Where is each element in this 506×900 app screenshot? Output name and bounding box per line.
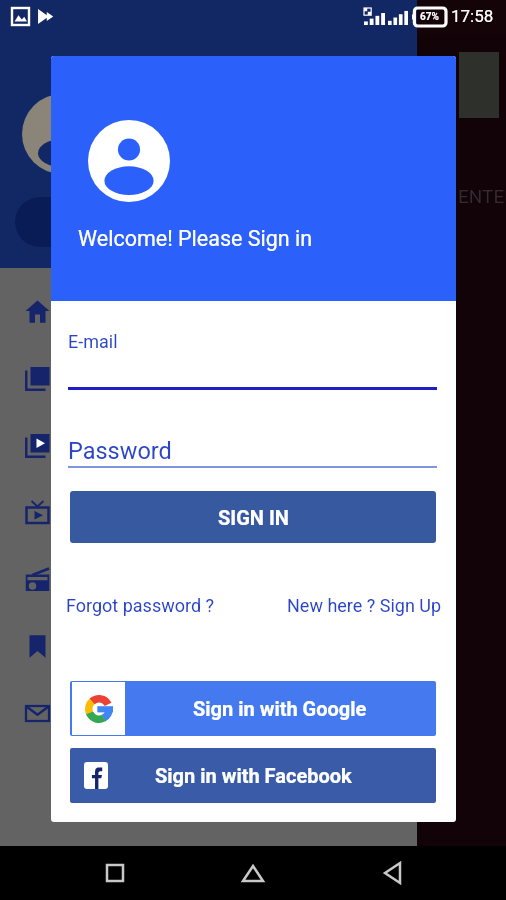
button[interactable]: SIGN IN xyxy=(70,491,436,543)
staticText: Forgot password ? xyxy=(66,595,215,616)
button[interactable]: Home xyxy=(229,849,277,897)
button[interactable]: Sign in with Facebook xyxy=(70,748,436,803)
button[interactable] xyxy=(0,613,417,680)
staticText: Welcome! Please Sign in xyxy=(78,226,313,251)
button[interactable] xyxy=(0,412,417,479)
button[interactable] xyxy=(0,479,417,546)
button[interactable]: New here ? Sign Up xyxy=(287,595,442,616)
staticText: E-mail xyxy=(68,331,118,352)
staticText: Password xyxy=(68,437,172,465)
staticText: New here ? Sign Up xyxy=(287,595,442,616)
staticText: ENTERTAINMENT xyxy=(458,185,506,207)
button[interactable] xyxy=(0,345,417,412)
staticText: 67% xyxy=(420,11,439,23)
button[interactable] xyxy=(0,680,417,747)
button[interactable] xyxy=(0,546,417,613)
staticText: Sign in with Google xyxy=(193,697,367,720)
staticText: SIGN IN xyxy=(218,506,289,529)
button[interactable]: Recent apps xyxy=(91,849,139,897)
staticText: 17:58 xyxy=(451,6,494,26)
button[interactable]: Back xyxy=(368,849,416,897)
button[interactable]: Sign in with Google xyxy=(70,681,436,736)
staticText: Sign in with Facebook xyxy=(155,764,352,787)
button[interactable] xyxy=(0,278,417,345)
button[interactable]: Forgot password ? xyxy=(66,595,215,616)
